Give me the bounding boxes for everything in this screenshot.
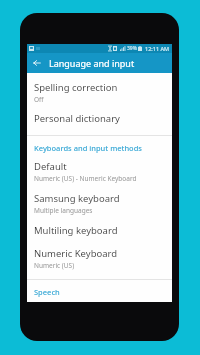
- button[interactable]: Default: [27, 158, 172, 185]
- staticText: Multiling keyboard: [34, 224, 118, 237]
- button[interactable]: Spelling correction: [27, 79, 172, 106]
- button[interactable]: Speech: [27, 286, 172, 298]
- staticText: Keyboards and input methods: [34, 143, 142, 153]
- button[interactable]: Personal dictionary: [27, 110, 172, 127]
- button[interactable]: Samsung keyboard: [27, 190, 172, 217]
- staticText: Numeric Keyboard: [34, 247, 118, 260]
- staticText: Numeric (US) - Numeric Keyboard: [34, 174, 137, 183]
- staticText: Numeric (US): [34, 261, 75, 270]
- staticText: Samsung keyboard: [34, 192, 120, 205]
- staticText: Language and input: [49, 57, 135, 69]
- staticText: Personal dictionary: [34, 112, 120, 125]
- staticText: 12:11 AM: [145, 45, 170, 52]
- staticText: 39%: [127, 45, 137, 52]
- button[interactable]: Numeric Keyboard: [27, 245, 172, 272]
- staticText: Off: [34, 95, 44, 104]
- staticText: Spelling correction: [34, 81, 118, 94]
- staticText: Speech: [34, 287, 60, 297]
- staticText: Multiple languages: [34, 206, 93, 215]
- button[interactable]: Multiling keyboard: [27, 222, 172, 239]
- staticText: Default: [34, 160, 67, 173]
- button[interactable]: Back: [29, 55, 45, 71]
- button[interactable]: Keyboards and input methods: [27, 142, 172, 154]
